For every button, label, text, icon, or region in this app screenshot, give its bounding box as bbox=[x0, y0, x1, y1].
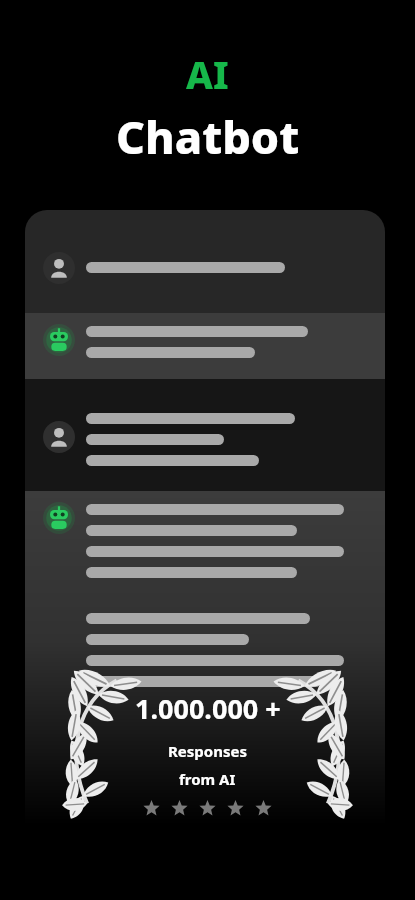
staticText: Chatbot bbox=[116, 106, 300, 167]
button[interactable]: Bot avatar bbox=[25, 313, 385, 379]
other: Bot avatar bbox=[43, 502, 75, 534]
other: User avatar bbox=[43, 252, 75, 284]
staticText: Responses bbox=[168, 741, 247, 761]
other: Bot avatar bbox=[43, 324, 75, 356]
staticText: 1.000.000 + bbox=[135, 690, 281, 727]
staticText: AI bbox=[186, 48, 229, 100]
staticText: from AI bbox=[179, 769, 236, 789]
button[interactable]: User avatar bbox=[25, 210, 385, 313]
button[interactable]: User avatar bbox=[25, 379, 385, 491]
other: User avatar bbox=[43, 421, 75, 453]
